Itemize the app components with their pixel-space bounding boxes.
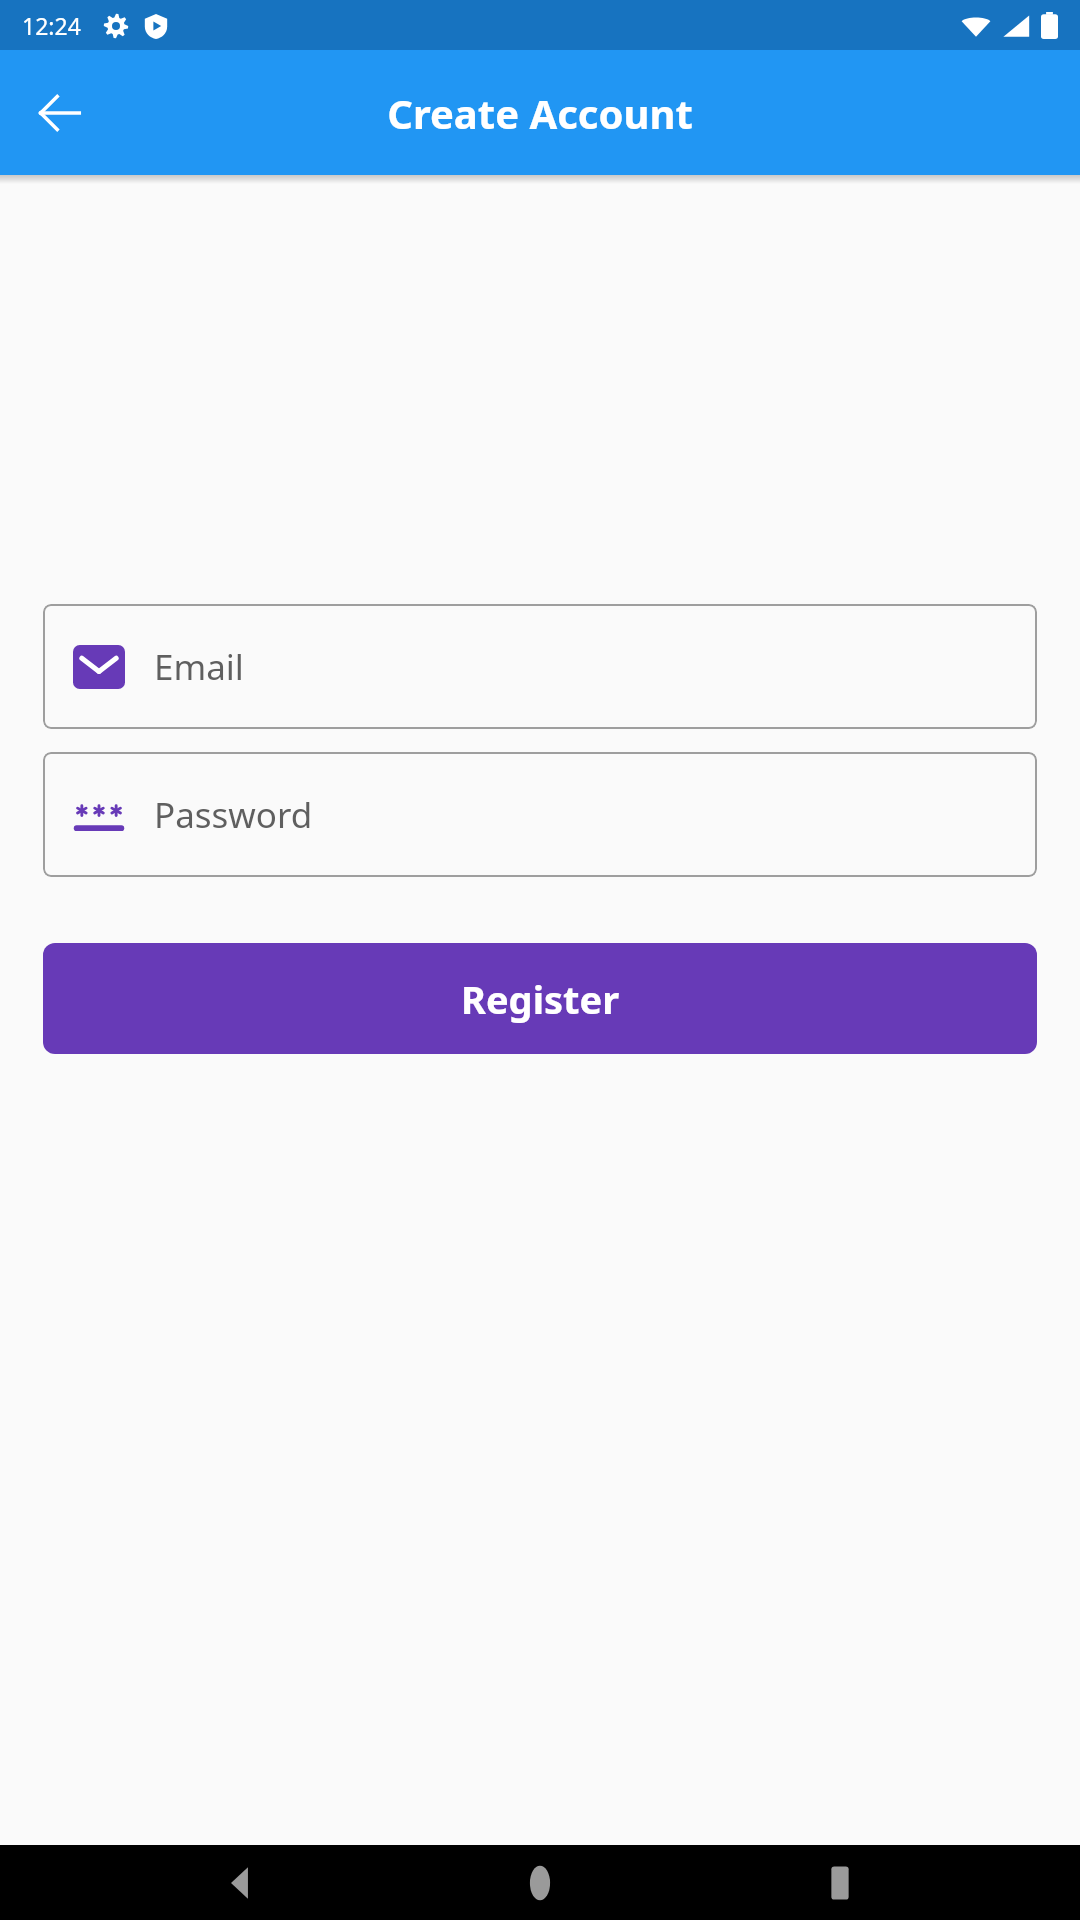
button[interactable]: Back (26, 79, 94, 147)
button[interactable]: Register (43, 943, 1037, 1054)
staticText: Password (154, 791, 313, 839)
staticText: Email (154, 643, 244, 691)
button[interactable]: Email (43, 604, 1037, 729)
button[interactable]: Back (180, 1845, 300, 1920)
staticText: Register (461, 973, 620, 1025)
button[interactable]: Password (43, 752, 1037, 877)
staticText: Create Account (387, 86, 693, 140)
button[interactable]: Recent apps (780, 1845, 900, 1920)
button[interactable]: Home (480, 1845, 600, 1920)
staticText: 12:24 (22, 10, 81, 41)
